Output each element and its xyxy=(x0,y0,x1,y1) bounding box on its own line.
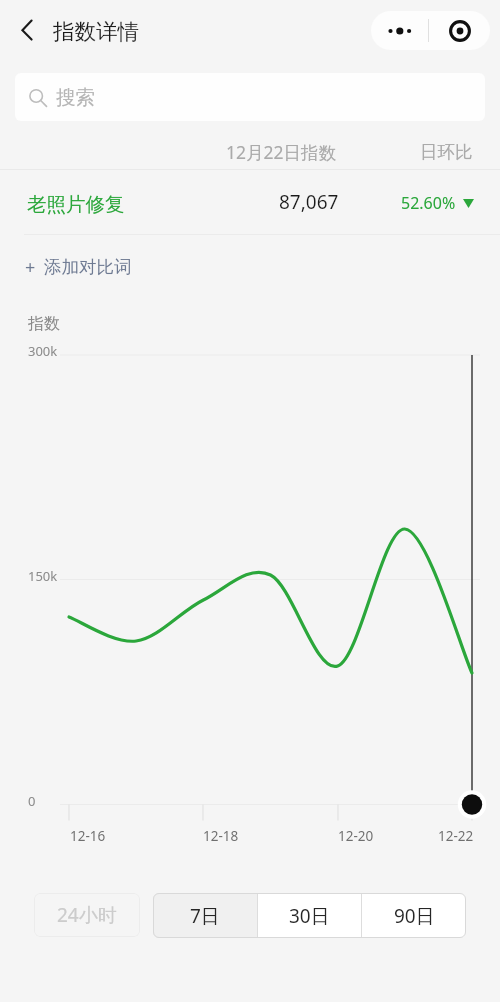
staticText: 150k xyxy=(28,567,58,585)
staticText: 12-18 xyxy=(203,827,239,845)
button[interactable]: Close mini program xyxy=(429,11,490,50)
staticText: 24小时 xyxy=(57,902,117,928)
button[interactable]: 7日 xyxy=(153,893,257,938)
staticText: 添加对比词 xyxy=(44,256,132,278)
staticText: 30日 xyxy=(289,903,330,929)
button[interactable]: 24小时 xyxy=(34,893,140,937)
staticText: 87,067 xyxy=(279,189,339,215)
staticText: 90日 xyxy=(394,903,435,929)
staticText: 12月22日指数 xyxy=(226,140,337,164)
staticText: 12-20 xyxy=(338,827,374,845)
staticText: 搜索 xyxy=(56,85,95,110)
staticText: 300k xyxy=(28,342,58,360)
button[interactable]: Back xyxy=(7,12,47,52)
button[interactable]: 30日 xyxy=(258,893,361,938)
button[interactable]: 90日 xyxy=(362,893,466,938)
staticText: 7日 xyxy=(190,903,220,929)
button[interactable]: More options xyxy=(371,11,428,50)
button[interactable]: 搜索 xyxy=(15,73,485,121)
staticText: 12-22 xyxy=(438,827,474,845)
button[interactable]: + xyxy=(25,252,132,282)
staticText: 老照片修复 xyxy=(27,192,125,217)
staticText: 日环比 xyxy=(420,141,473,163)
staticText: + xyxy=(25,255,36,280)
staticText: 指数详情 xyxy=(53,18,139,45)
staticText: 52.60% xyxy=(401,192,456,214)
staticText: 0 xyxy=(28,792,36,810)
staticText: 指数 xyxy=(28,314,60,334)
button[interactable]: 老照片修复 xyxy=(0,170,500,234)
staticText: 12-16 xyxy=(70,827,106,845)
